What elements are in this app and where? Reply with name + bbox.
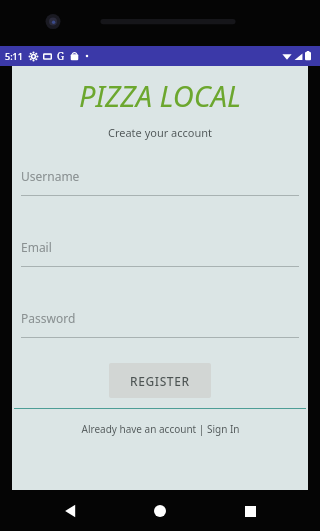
button[interactable]: Home	[141, 492, 179, 530]
staticText: REGISTER	[130, 373, 190, 389]
staticText: G	[57, 49, 65, 63]
button[interactable]: REGISTER	[109, 363, 211, 398]
staticText: Username	[21, 168, 80, 184]
staticText: PIZZA LOCAL	[12, 76, 308, 115]
button[interactable]: Already have an account | Sign In	[12, 422, 308, 436]
button[interactable]: Recent apps	[231, 492, 269, 530]
staticText: Create your account	[12, 125, 308, 140]
staticText: 5:11	[5, 50, 23, 62]
staticText: Email	[21, 239, 52, 255]
staticText: Password	[21, 310, 76, 326]
button[interactable]: Email	[21, 239, 299, 267]
button[interactable]: Back	[52, 492, 90, 530]
button[interactable]: Username	[21, 168, 299, 196]
button[interactable]: Password	[21, 310, 299, 338]
staticText: Already have an account | Sign In	[81, 422, 240, 436]
